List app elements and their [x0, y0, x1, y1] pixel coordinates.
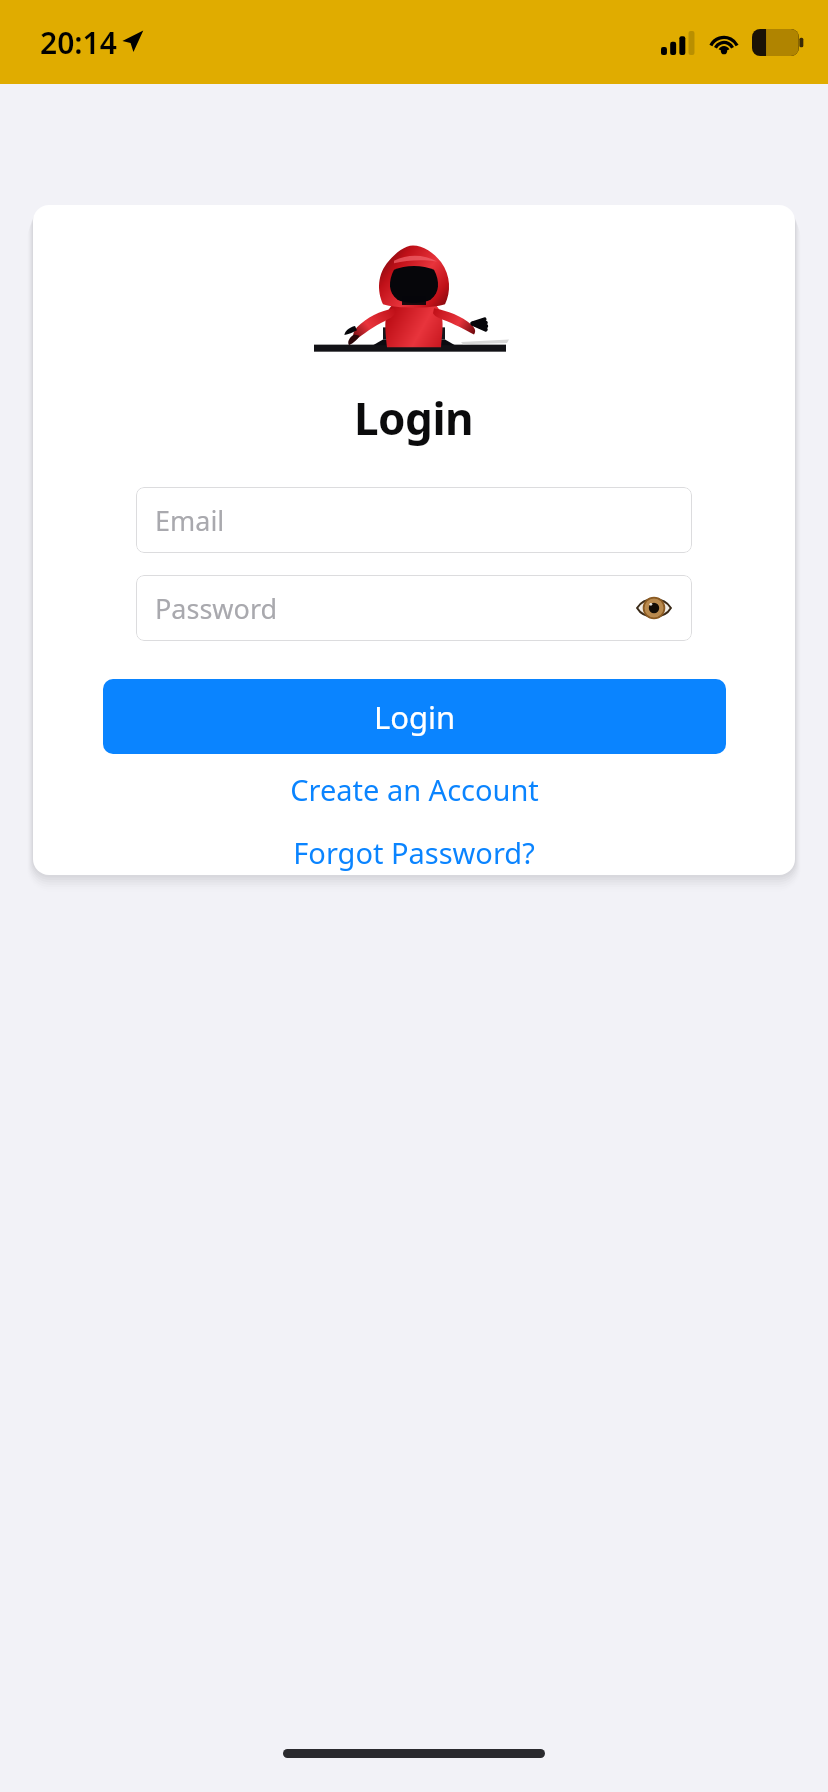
staticText: Email	[155, 502, 225, 539]
button[interactable]: Password	[136, 575, 692, 641]
staticText: Forgot Password?	[293, 833, 535, 872]
button[interactable]: Create an Account	[280, 768, 549, 811]
staticText: Password	[155, 590, 278, 627]
button[interactable]: Show password	[634, 588, 674, 628]
button[interactable]: Login	[103, 679, 726, 754]
staticText: Login	[354, 388, 474, 448]
staticText: Login	[374, 696, 456, 738]
button[interactable]: Forgot Password?	[283, 831, 545, 874]
button[interactable]: Email	[136, 487, 692, 553]
staticText: Create an Account	[290, 770, 539, 809]
staticText: 20:14	[40, 22, 117, 63]
